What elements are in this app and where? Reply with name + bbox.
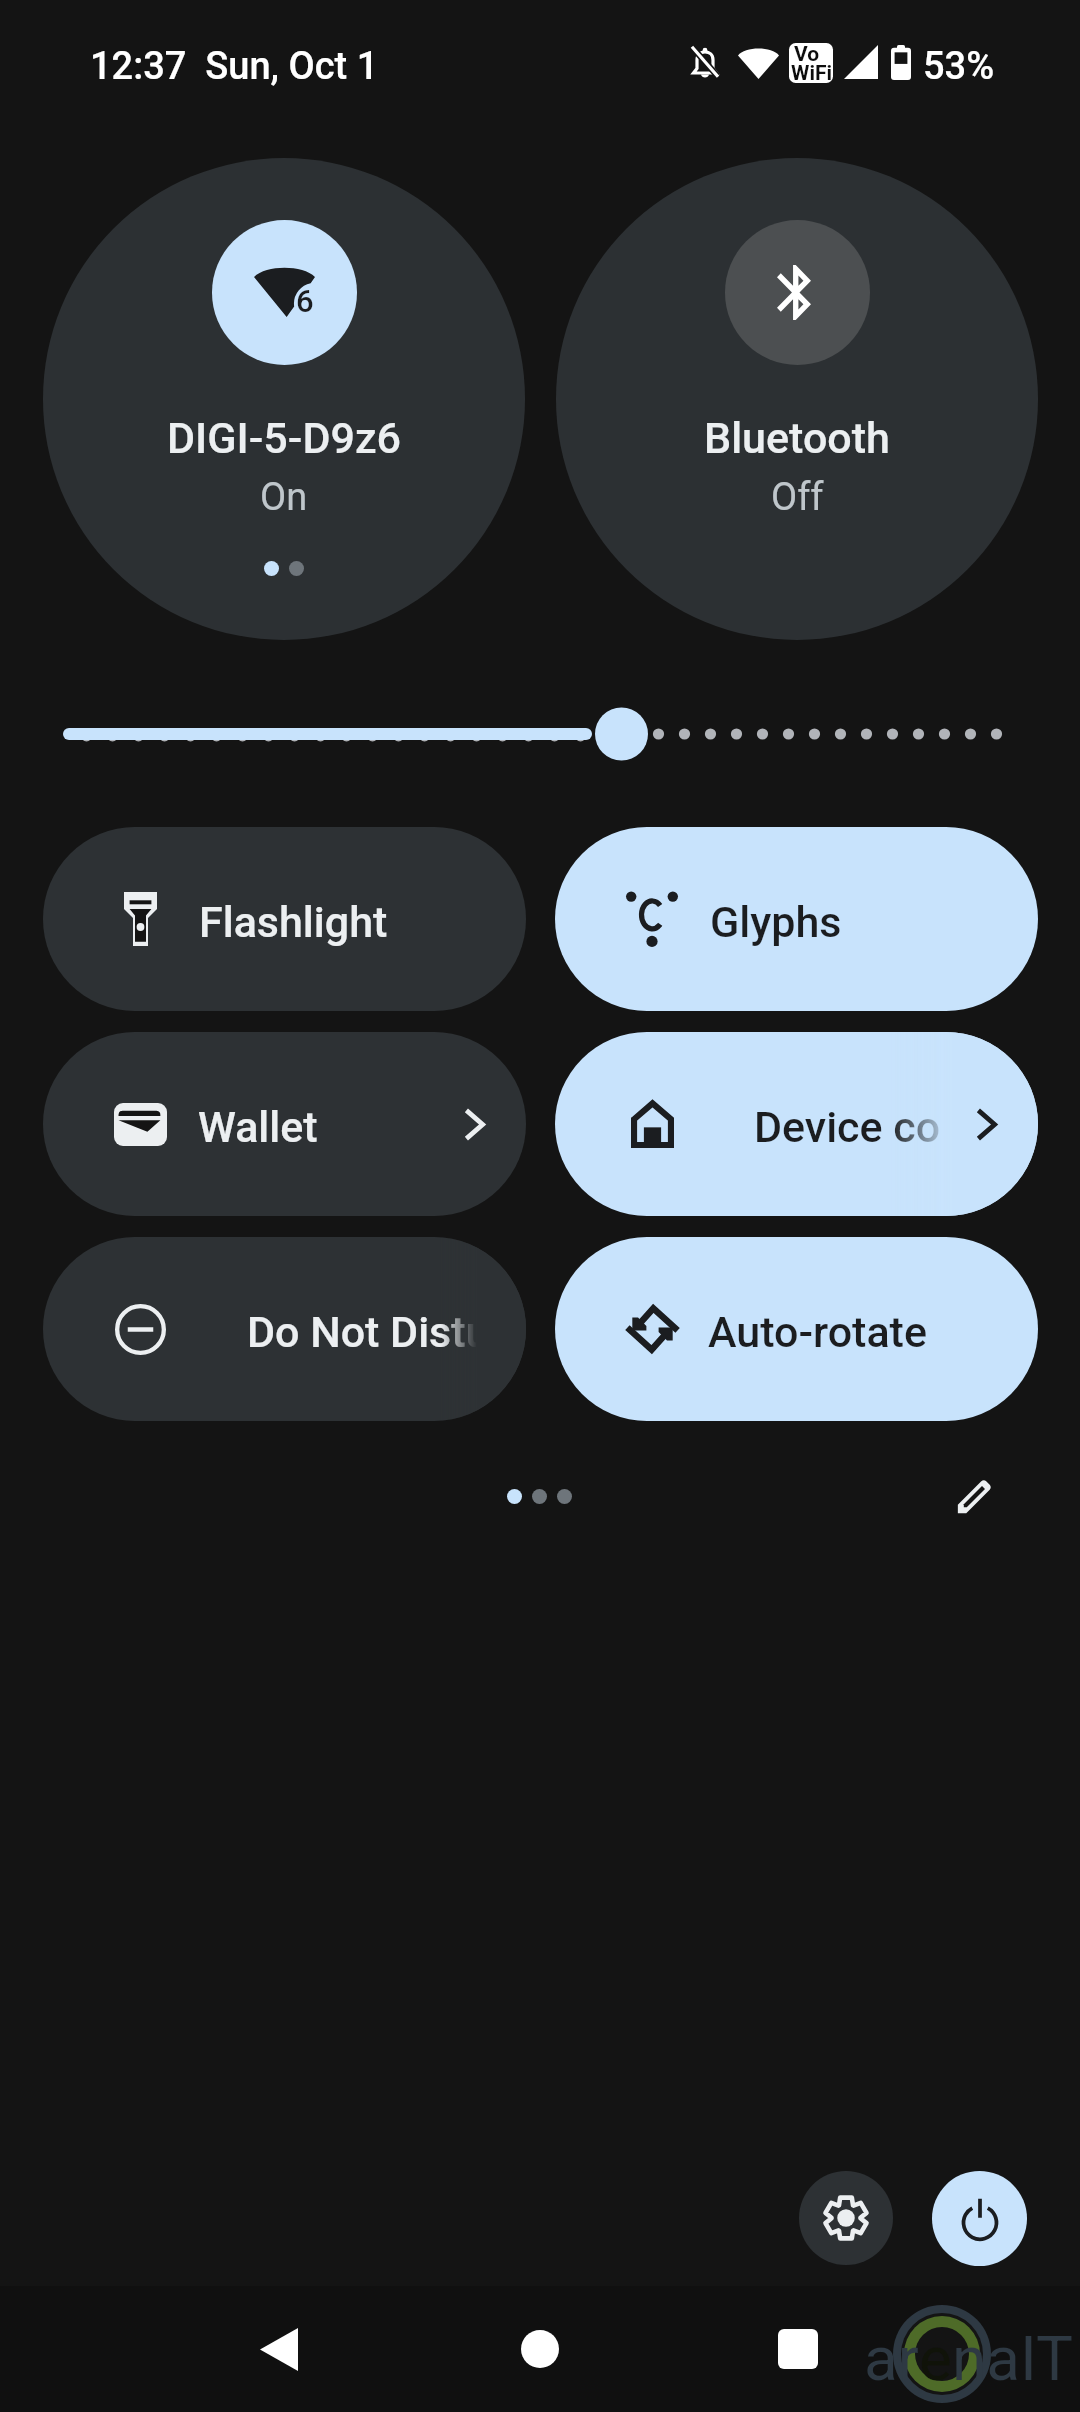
staticText: Flashlight xyxy=(199,897,388,947)
staticText: e xyxy=(919,2322,952,2395)
staticText: 12:37 Sun, Oct 1 xyxy=(90,44,379,89)
staticText: On xyxy=(260,475,308,520)
button[interactable]: Bluetooth xyxy=(556,158,1038,640)
button[interactable]: Wallet xyxy=(43,1032,526,1216)
button[interactable]: Flashlight xyxy=(43,827,526,1011)
staticText: Vo xyxy=(794,42,820,67)
button[interactable]: Back xyxy=(219,2289,339,2409)
button[interactable]: Do Not Distu xyxy=(43,1237,526,1421)
button[interactable]: Auto-rotate xyxy=(555,1237,1038,1421)
button[interactable]: Recent apps xyxy=(738,2289,858,2409)
button[interactable]: Settings xyxy=(799,2171,893,2265)
button[interactable]: Glyphs xyxy=(555,827,1038,1011)
button[interactable]: Power xyxy=(932,2171,1027,2266)
staticText: ar xyxy=(864,2322,919,2395)
staticText: Off xyxy=(771,475,824,520)
staticText: Auto-rotate xyxy=(708,1307,927,1357)
button[interactable]: Home xyxy=(480,2289,600,2409)
button[interactable]: Edit tiles xyxy=(936,1457,1014,1535)
staticText: na xyxy=(952,2322,1020,2395)
staticText: Bluetooth xyxy=(704,413,890,463)
staticText: WiFi xyxy=(791,61,835,86)
staticText: DIGI-5-D9z6 xyxy=(167,413,401,463)
staticText: Do Not Distu xyxy=(247,1307,490,1357)
staticText: 6 xyxy=(296,283,314,319)
staticText: 53% xyxy=(923,44,995,89)
staticText: Glyphs xyxy=(710,897,842,947)
staticText: Wallet xyxy=(198,1102,318,1152)
button[interactable]: Device co xyxy=(555,1032,1038,1216)
staticText: IT xyxy=(1020,2322,1073,2395)
button[interactable]: 6 xyxy=(43,158,525,640)
staticText: Device co xyxy=(754,1102,941,1152)
